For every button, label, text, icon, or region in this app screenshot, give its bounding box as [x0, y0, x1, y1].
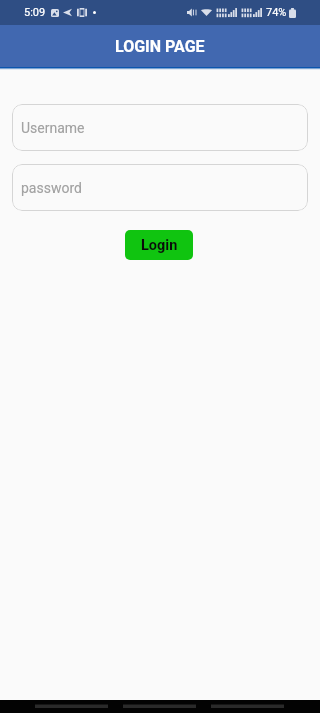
staticText: 74%	[266, 6, 287, 19]
button[interactable]: Recent apps	[35, 700, 108, 713]
staticText: LOGIN PAGE	[115, 37, 205, 56]
button[interactable]: password	[12, 164, 308, 211]
button[interactable]: Back	[211, 700, 284, 713]
staticText: password	[21, 180, 82, 196]
button[interactable]: Username	[12, 104, 308, 151]
staticText: 5:09	[24, 6, 46, 19]
staticText: Login	[141, 237, 178, 254]
button[interactable]: Login	[125, 230, 193, 260]
staticText: Username	[21, 120, 85, 136]
button[interactable]: Home	[123, 700, 196, 713]
